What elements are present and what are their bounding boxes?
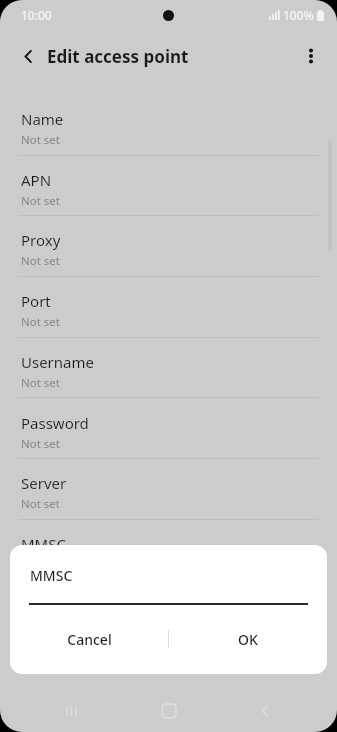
staticText: Port xyxy=(21,291,51,311)
staticText: 10:00 xyxy=(21,7,52,23)
staticText: Cancel xyxy=(67,630,112,649)
staticText: OK xyxy=(238,630,258,649)
button[interactable]: Password xyxy=(0,400,337,461)
staticText: MMS proxy xyxy=(21,595,100,615)
staticText: Username xyxy=(21,352,94,372)
staticText: APN xyxy=(21,170,52,190)
button[interactable]: MMS proxy xyxy=(0,582,337,643)
staticText: Not set xyxy=(21,132,60,148)
button[interactable]: Username xyxy=(0,339,337,400)
staticText: Not set xyxy=(21,193,60,209)
staticText: Not set xyxy=(21,375,60,391)
staticText: Not set xyxy=(21,436,60,452)
staticText: Server xyxy=(21,473,67,493)
button[interactable]: Cancel xyxy=(10,619,168,659)
button[interactable]: Server xyxy=(0,460,337,521)
staticText: Not set xyxy=(21,253,60,269)
button[interactable]: Back xyxy=(10,38,46,74)
staticText: MMSC xyxy=(21,534,66,554)
button[interactable]: Name xyxy=(0,96,337,157)
staticText: MMSC xyxy=(30,566,73,585)
button[interactable]: APN xyxy=(0,157,337,218)
staticText: Not set xyxy=(21,314,60,330)
staticText: Edit access point xyxy=(47,45,189,68)
button[interactable]: Proxy xyxy=(0,217,337,278)
button[interactable]: OK xyxy=(169,619,327,659)
button[interactable]: Port xyxy=(0,278,337,339)
button[interactable]: MMSC xyxy=(0,521,337,582)
staticText: 100% xyxy=(283,7,314,23)
staticText: Not set xyxy=(21,557,60,573)
staticText: Name xyxy=(21,109,64,129)
button[interactable]: Home xyxy=(145,690,193,732)
staticText: Not set xyxy=(21,496,60,512)
staticText: Proxy xyxy=(21,230,61,250)
staticText: Password xyxy=(21,413,89,433)
button[interactable]: More options xyxy=(293,38,329,74)
